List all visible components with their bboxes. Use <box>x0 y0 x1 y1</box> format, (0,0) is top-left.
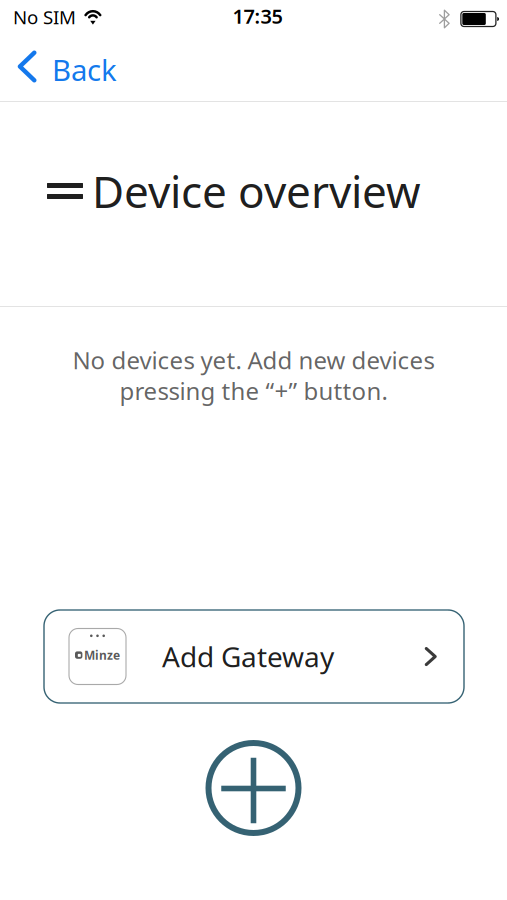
staticText: pressing the “+” button. <box>119 375 387 407</box>
staticText: Back <box>52 50 117 89</box>
staticText: 17:35 <box>232 3 282 29</box>
button[interactable]: Add Gateway <box>44 610 464 703</box>
staticText: No devices yet. Add new devices <box>72 344 434 376</box>
staticText: No SIM <box>13 5 76 29</box>
button[interactable]: Menu <box>47 175 83 207</box>
button[interactable]: Add device <box>204 739 302 837</box>
staticText: Minze <box>84 647 120 663</box>
staticText: Add Gateway <box>162 638 334 675</box>
staticText: Device overview <box>92 162 421 220</box>
button[interactable]: Back <box>0 42 129 97</box>
